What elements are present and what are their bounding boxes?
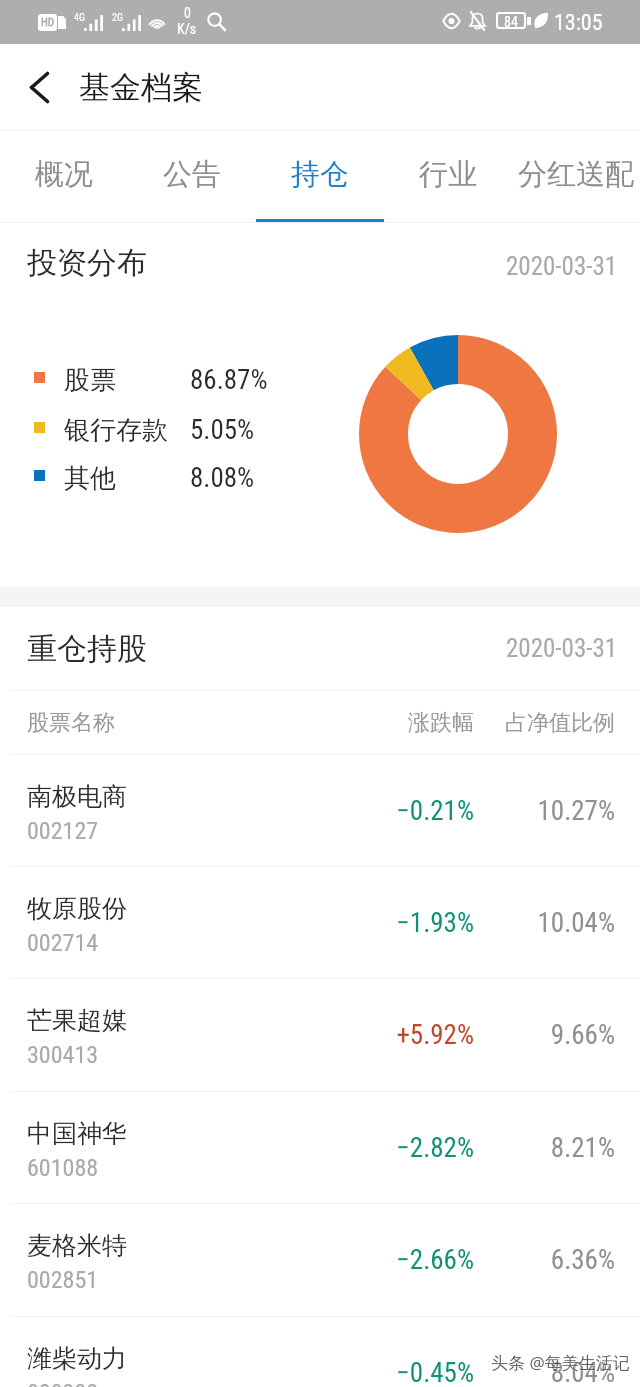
staticText: 84 [504, 14, 518, 27]
staticText: 8.08% [190, 462, 255, 494]
staticText: K/s [177, 21, 197, 37]
staticText: 银行存款 [64, 414, 168, 447]
button[interactable]: 概况 [0, 131, 128, 222]
staticText: 4G [74, 12, 85, 24]
staticText: 300413 [27, 1041, 99, 1069]
staticText: −0.21% [333, 795, 474, 827]
staticText: 601088 [27, 1154, 99, 1182]
staticText: 公告 [163, 156, 221, 193]
staticText: −2.66% [333, 1244, 474, 1276]
staticText: 0 [184, 5, 191, 21]
staticText: 002851 [27, 1266, 99, 1294]
staticText: 涨跌幅 [333, 709, 474, 737]
staticText: 持仓 [291, 156, 349, 193]
staticText: 2020-03-31 [506, 634, 618, 663]
staticText: 南极电商 [27, 781, 127, 812]
staticText: +5.92% [333, 1019, 474, 1051]
staticText: 8.21% [474, 1132, 615, 1164]
staticText: 002127 [27, 817, 99, 845]
button[interactable]: 行业 [384, 131, 512, 222]
button[interactable]: Search [207, 12, 226, 31]
staticText: 8.04% [474, 1357, 615, 1387]
staticText: 中国神华 [27, 1118, 127, 1149]
staticText: 行业 [419, 156, 477, 193]
button[interactable]: 中国神华 [0, 1092, 640, 1203]
staticText: −2.82% [333, 1132, 474, 1164]
button[interactable]: 公告 [128, 131, 256, 222]
staticText: 000338 [27, 1379, 99, 1387]
staticText: 占净值比例 [474, 709, 615, 737]
staticText: 基金档案 [79, 68, 203, 107]
staticText: 投资分布 [27, 244, 147, 282]
staticText: −0.45% [333, 1357, 474, 1387]
staticText: 股票名称 [27, 709, 115, 737]
staticText: 芒果超媒 [27, 1005, 127, 1036]
staticText: HD [41, 16, 55, 29]
staticText: 2020-03-31 [506, 252, 618, 281]
staticText: 分红送配 [518, 156, 634, 193]
button[interactable]: 持仓 [256, 131, 384, 222]
staticText: 2G [112, 12, 123, 24]
button[interactable]: 分红送配 [512, 131, 640, 222]
staticText: 麦格米特 [27, 1230, 127, 1261]
button[interactable]: Back [0, 44, 78, 130]
staticText: 86.87% [190, 364, 268, 396]
button[interactable]: 牧原股份 [0, 867, 640, 978]
button[interactable]: 麦格米特 [0, 1204, 640, 1316]
staticText: 股票 [64, 364, 116, 397]
staticText: 13:05 [554, 10, 603, 36]
button[interactable]: 南极电商 [0, 755, 640, 866]
staticText: 10.04% [474, 907, 615, 939]
staticText: 002714 [27, 929, 99, 957]
staticText: 6.36% [474, 1244, 615, 1276]
staticText: 头条 @每美生活记 [491, 1351, 630, 1374]
staticText: 牧原股份 [27, 893, 127, 924]
staticText: 其他 [64, 462, 116, 495]
staticText: 概况 [35, 156, 93, 193]
button[interactable]: 潍柴动力 [0, 1317, 640, 1387]
staticText: −1.93% [333, 907, 474, 939]
staticText: 重仓持股 [27, 630, 147, 668]
staticText: 潍柴动力 [27, 1343, 127, 1374]
staticText: 9.66% [474, 1019, 615, 1051]
button[interactable]: 芒果超媒 [0, 979, 640, 1091]
staticText: 10.27% [474, 795, 615, 827]
staticText: 头条 @每美生活记 [492, 1352, 631, 1375]
staticText: 5.05% [190, 414, 255, 446]
